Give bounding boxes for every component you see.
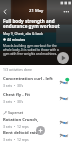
staticText: 3 sets • 30's	[3, 99, 24, 104]
staticText: 44 minutes	[7, 37, 26, 42]
staticText: Concentration curl - left	[3, 76, 53, 82]
button[interactable]: More options	[61, 6, 72, 17]
button[interactable]: Play	[57, 52, 69, 64]
staticText: 3 sets • 12 reps	[3, 124, 29, 129]
staticText: 1/3 activities done	[3, 67, 32, 72]
staticText: 21 May	[29, 8, 44, 14]
button[interactable]: Chest fly - Fit	[0, 91, 72, 105]
staticText: Chest fly - Fit	[3, 92, 31, 98]
staticText: Superset	[8, 110, 24, 115]
button[interactable]: Back	[0, 6, 11, 17]
button[interactable]: Rotation Crunch, alternated - R...	[0, 116, 72, 129]
button[interactable]: Bent deltoid raise	[0, 129, 72, 142]
button[interactable]: Concentration curl - left	[0, 75, 72, 89]
staticText: 3 sets • 12 reps	[3, 137, 29, 142]
button[interactable]: Superset	[3, 109, 72, 116]
staticText: Bent deltoid raise	[3, 130, 40, 136]
staticText: Full body strength and endurance gym wor…	[3, 18, 60, 29]
staticText: Rotation Crunch, alternated - R...	[3, 117, 56, 123]
staticText: Muscle-building gym workout for the whol…	[3, 44, 59, 56]
button[interactable]: Add exercise	[36, 126, 45, 135]
staticText: 3 sets • 30's	[3, 83, 24, 88]
staticText: May 9, Chest, abs & back	[3, 31, 44, 36]
